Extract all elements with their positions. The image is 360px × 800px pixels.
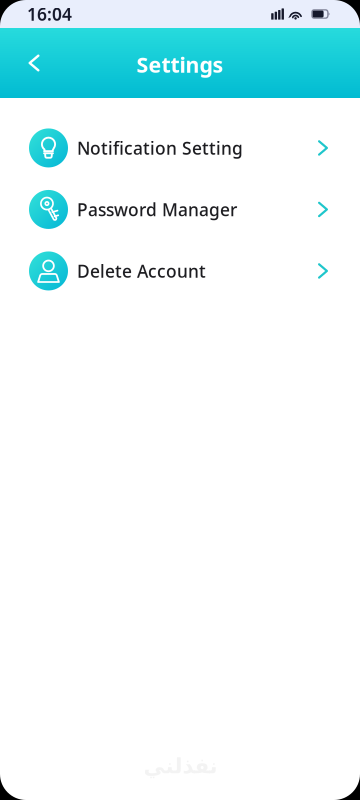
button[interactable]: Delete Account xyxy=(0,240,360,302)
button[interactable]: Back xyxy=(12,41,56,85)
button[interactable]: Password Manager xyxy=(0,179,360,240)
staticText: Settings xyxy=(136,50,223,79)
staticText: 16:04 xyxy=(27,2,72,25)
button[interactable]: Notification Setting xyxy=(0,117,360,179)
staticText: Notification Setting xyxy=(77,136,243,159)
staticText: Password Manager xyxy=(77,198,237,221)
staticText: Delete Account xyxy=(77,259,206,282)
staticText: نفذلني xyxy=(143,754,217,778)
